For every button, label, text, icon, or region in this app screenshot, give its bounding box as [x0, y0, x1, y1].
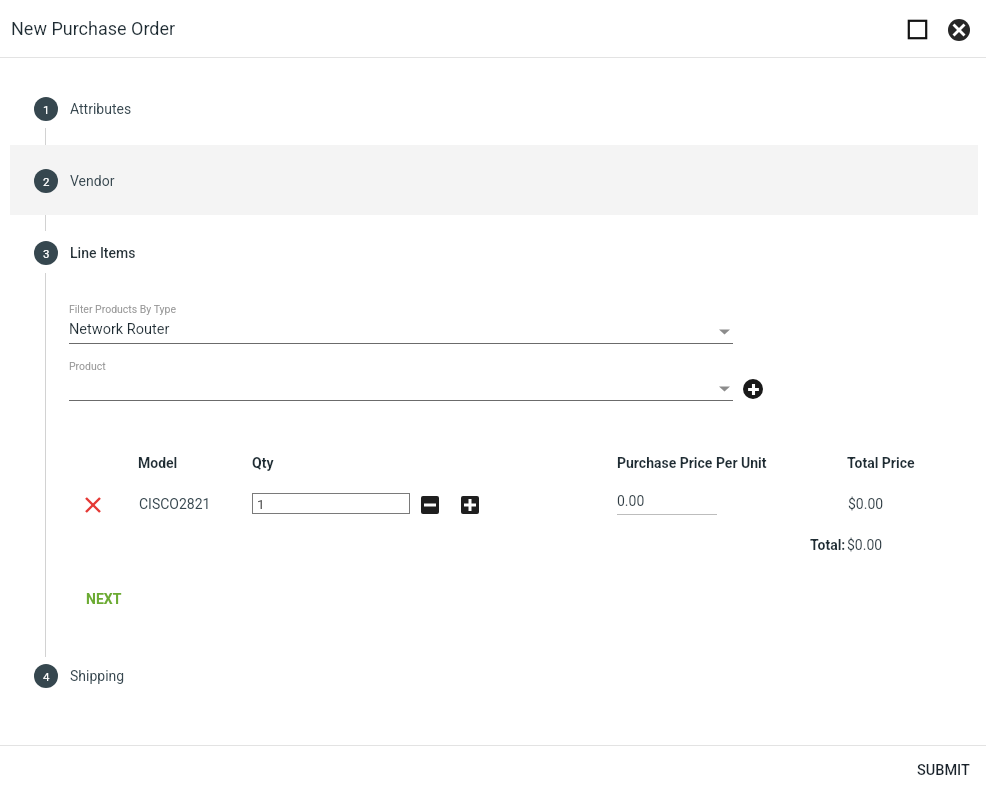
staticText: Total:: [810, 537, 846, 553]
staticText: Total Price: [847, 455, 915, 471]
button[interactable]: Add product: [743, 379, 763, 399]
button[interactable]: 1: [34, 97, 132, 121]
staticText: Purchase Price Per Unit: [617, 455, 767, 471]
button[interactable]: NEXT: [73, 583, 135, 615]
button[interactable]: Remove line item: [79, 491, 107, 519]
button[interactable]: 3: [34, 241, 136, 265]
staticText: Network Router: [69, 321, 170, 338]
button[interactable]: Maximize: [900, 12, 934, 46]
staticText: CISCO2821: [139, 496, 211, 512]
staticText: SUBMIT: [917, 762, 970, 779]
staticText: $0.00: [847, 537, 883, 553]
button[interactable]: Open dropdown: [715, 380, 733, 398]
button[interactable]: SUBMIT: [901, 754, 986, 786]
button[interactable]: 1: [252, 493, 410, 514]
staticText: Filter Products By Type: [69, 303, 177, 315]
staticText: Vendor: [70, 173, 115, 189]
button[interactable]: 4: [34, 664, 125, 688]
button[interactable]: Close: [942, 13, 976, 47]
staticText: 4: [43, 670, 50, 683]
staticText: Qty: [252, 455, 274, 471]
staticText: Shipping: [70, 668, 125, 684]
staticText: Line Items: [70, 245, 136, 261]
button[interactable]: Decrease quantity: [421, 496, 439, 514]
staticText: 1: [43, 103, 50, 116]
button[interactable]: 2: [34, 169, 115, 193]
staticText: Model: [138, 455, 178, 471]
staticText: Attributes: [70, 101, 132, 117]
staticText: 3: [43, 247, 50, 260]
staticText: $0.00: [848, 496, 884, 512]
button[interactable]: Open dropdown: [715, 323, 733, 341]
staticText: 0.00: [617, 493, 645, 509]
staticText: Product: [69, 360, 106, 372]
staticText: New Purchase Order: [11, 18, 176, 39]
button[interactable]: Increase quantity: [461, 496, 479, 514]
staticText: 2: [43, 175, 50, 188]
staticText: NEXT: [86, 591, 122, 607]
staticText: 1: [257, 496, 265, 512]
